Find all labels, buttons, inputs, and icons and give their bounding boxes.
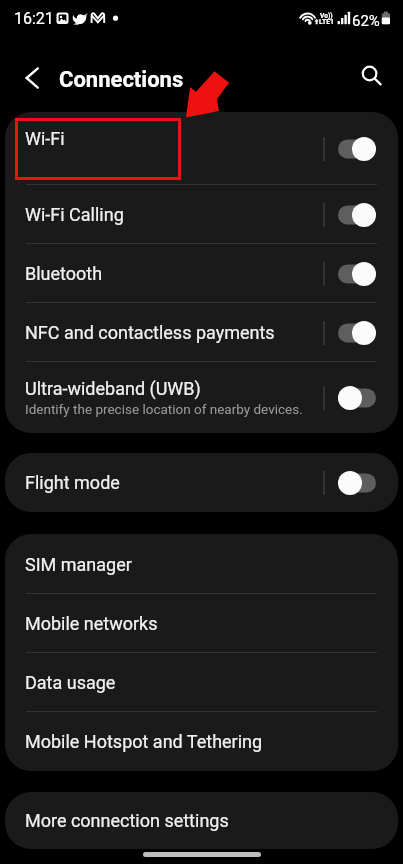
button[interactable]: Wi-Fi Calling	[5, 185, 398, 244]
staticText: More connection settings	[25, 810, 229, 831]
button[interactable]: SIM manager	[5, 534, 398, 594]
staticText: Ultra-wideband (UWB)	[25, 378, 201, 399]
staticText: Flight mode	[25, 472, 120, 493]
button[interactable]: Data usage	[5, 653, 398, 712]
button[interactable]: Bluetooth	[5, 244, 398, 303]
staticText: Identify the precise location of nearby …	[25, 401, 303, 417]
staticText: SIM manager	[25, 554, 132, 575]
button[interactable]: NFC and contactless payments	[5, 303, 398, 362]
staticText: Bluetooth	[25, 263, 103, 284]
button[interactable]: Flight mode	[5, 453, 398, 512]
staticText: Connections	[59, 67, 184, 93]
staticText: 16:21	[14, 9, 54, 28]
button[interactable]: Back	[11, 56, 55, 100]
button[interactable]: Search	[350, 55, 394, 99]
button[interactable]: Toggle on	[338, 321, 376, 345]
button[interactable]: Toggle on	[338, 137, 376, 161]
button[interactable]: More connection settings	[5, 792, 398, 849]
button[interactable]: Wi-Fi	[5, 112, 398, 185]
button[interactable]: Toggle on	[338, 262, 376, 286]
button[interactable]: Toggle off	[338, 386, 376, 410]
staticText: LTE1	[319, 18, 334, 26]
staticText: Data usage	[25, 672, 116, 693]
button[interactable]: Toggle on	[338, 203, 376, 227]
button[interactable]: Ultra-wideband (UWB)	[5, 362, 398, 433]
staticText: NFC and contactless payments	[25, 322, 275, 343]
button[interactable]: Mobile networks	[5, 594, 398, 653]
button[interactable]: Mobile Hotspot and Tethering	[5, 712, 398, 771]
staticText: Wi-Fi Calling	[25, 204, 124, 225]
staticText: Wi-Fi	[25, 128, 65, 149]
staticText: Mobile Hotspot and Tethering	[25, 731, 263, 752]
button[interactable]: Toggle off	[338, 471, 376, 495]
staticText: 62%	[352, 12, 380, 30]
staticText: Mobile networks	[25, 613, 158, 634]
staticText: Vo))	[320, 12, 333, 20]
